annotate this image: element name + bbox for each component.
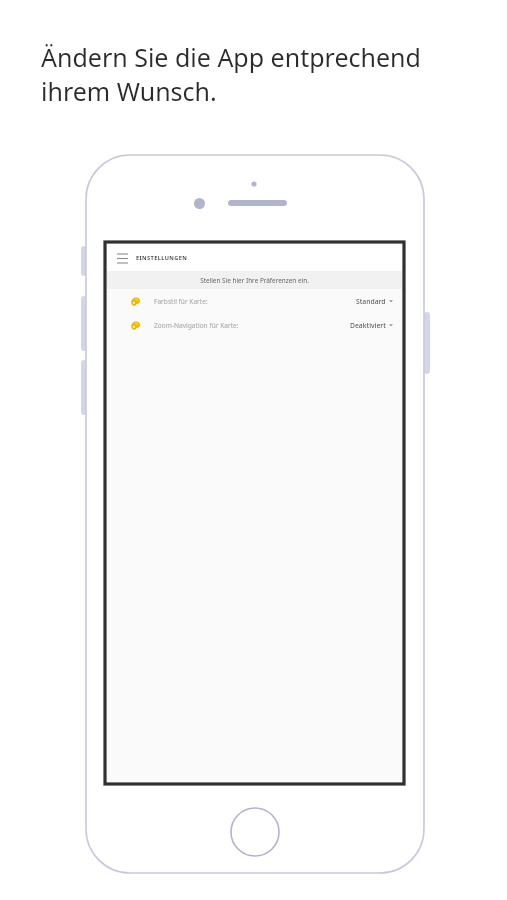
staticText: Ändern Sie die App entprechend [41,40,421,74]
button[interactable]: Zoom-Navigation für Karte: [107,313,402,337]
button[interactable]: Farbstil für Karte: [107,289,402,313]
staticText: EINSTELLUNGEN [136,254,188,262]
staticText: Farbstil für Karte: [154,297,208,306]
staticText: Standard [356,297,386,306]
staticText: ihrem Wunsch. [41,74,217,108]
button[interactable]: Menü [115,251,129,265]
staticText: Stellen Sie hier Ihre Präferenzen ein. [200,276,309,285]
staticText: Zoom-Navigation für Karte: [154,321,239,330]
staticText: Deaktiviert [350,321,386,330]
